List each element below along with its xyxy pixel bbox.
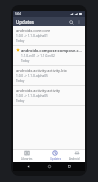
staticText: Updates	[50, 157, 61, 161]
button[interactable]: androidx.compose:compose-compiler	[13, 46, 85, 65]
staticText: Today	[21, 59, 30, 63]
button[interactable]: Back	[24, 162, 33, 171]
staticText: Libraries	[21, 157, 33, 161]
staticText: 1.0.0 -> 1.1.0-alpha01	[16, 34, 48, 38]
button[interactable]: Android Docs	[69, 149, 85, 162]
staticText: androidx.activity:activity	[16, 88, 61, 93]
staticText: Today	[16, 99, 25, 103]
button[interactable]: More options	[75, 18, 82, 25]
staticText: 1.0.0 -> 1.1.0-alpha05	[16, 74, 48, 78]
staticText: androidx.compose:compose-compiler	[21, 48, 82, 53]
staticText: Today	[16, 39, 25, 43]
staticText: androidx.activity:activity-ktx	[16, 68, 67, 73]
staticText: androidx.core:core	[16, 28, 51, 33]
button[interactable]: androidx.activity:activity	[13, 86, 85, 105]
staticText: Today	[16, 79, 25, 83]
staticText: Updates	[16, 19, 34, 25]
button[interactable]: androidx.activity:activity-ktx	[13, 66, 85, 85]
staticText: 5:04	[15, 12, 21, 16]
button[interactable]: Home	[45, 162, 54, 171]
button[interactable]: Updates	[41, 149, 69, 162]
staticText: 1.1.0-rc01 -> 1.1.0-rc02	[21, 54, 55, 58]
staticText: 1.0.0 -> 1.1.0-alpha05	[16, 94, 48, 98]
staticText: Android Docs	[69, 157, 85, 161]
button[interactable]: Recents	[65, 162, 74, 171]
button[interactable]: Search	[67, 18, 75, 26]
button[interactable]: Libraries	[13, 149, 41, 162]
button[interactable]: androidx.core:core	[13, 26, 85, 45]
